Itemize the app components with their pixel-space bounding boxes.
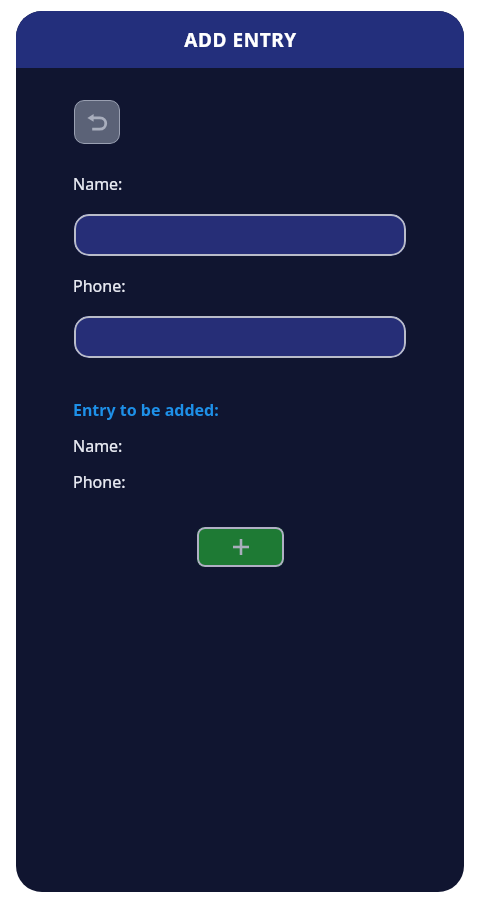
button[interactable] (74, 214, 406, 256)
staticText: Phone: (73, 275, 126, 297)
staticText: Entry to be added: (73, 399, 219, 421)
staticText: Phone: (73, 471, 126, 493)
staticText: ADD ENTRY (184, 27, 297, 53)
staticText: Name: (73, 173, 123, 195)
staticText: Name: (73, 435, 123, 457)
button[interactable]: Add entry (197, 527, 284, 567)
button[interactable] (74, 316, 406, 358)
button[interactable]: Back (74, 100, 120, 144)
